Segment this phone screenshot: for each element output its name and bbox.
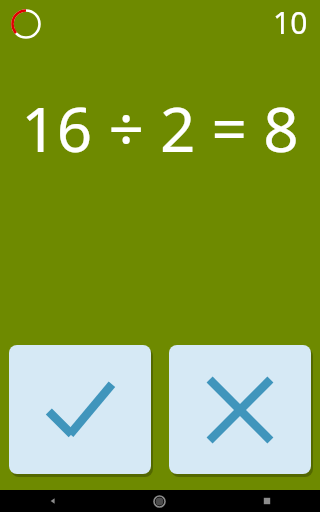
other: Time remaining — [10, 8, 42, 40]
staticText: 10 — [273, 2, 308, 43]
staticText: 16 ÷ 2 = 8 — [6, 86, 314, 170]
button[interactable]: Wrong — [169, 345, 311, 474]
button[interactable]: Recent apps — [213, 490, 320, 512]
button[interactable]: Home — [106, 490, 213, 512]
button[interactable]: Back — [0, 490, 106, 512]
button[interactable]: Correct — [9, 345, 151, 474]
